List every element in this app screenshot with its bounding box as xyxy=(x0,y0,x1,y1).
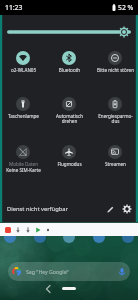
staticText: Mobile Daten xyxy=(3,161,44,167)
staticText: Keine SIM-Karte xyxy=(6,167,41,173)
button[interactable]: Automatisch drehen xyxy=(46,94,92,140)
staticText: Dienst nicht verfügbar xyxy=(7,205,68,213)
staticText: Bitte nicht stören xyxy=(95,67,136,73)
button[interactable]: Streamen xyxy=(92,142,138,188)
staticText: Sag "Hey Google" xyxy=(26,268,69,275)
staticText: Flugmodus xyxy=(49,161,90,167)
button[interactable]: Energiesparmo- dus xyxy=(92,94,138,140)
button[interactable]: Bitte nicht stören xyxy=(92,48,138,94)
button[interactable]: Taschenlampe xyxy=(0,94,46,140)
button[interactable]: Mobile Daten xyxy=(0,142,46,188)
button[interactable]: Sprachsuche xyxy=(118,268,126,276)
button[interactable]: Helligkeit xyxy=(0,24,138,40)
button[interactable]: o2-WLAN05 xyxy=(0,48,46,94)
staticText: Streamen xyxy=(95,161,136,167)
button[interactable]: Einstellungen xyxy=(120,202,134,216)
staticText: 11:23 xyxy=(5,3,23,12)
staticText: Taschenlampe xyxy=(3,113,44,119)
button[interactable]: Sag "Hey Google" xyxy=(8,262,130,281)
staticText: Energiesparmo- dus xyxy=(95,113,136,125)
staticText: o2-WLAN05 xyxy=(3,67,44,73)
staticText: Bluetooth xyxy=(49,67,90,73)
button[interactable]: Bluetooth xyxy=(46,48,92,94)
staticText: Automatisch drehen xyxy=(49,113,90,125)
staticText: 52 % xyxy=(118,3,134,12)
button[interactable]: Bearbeiten xyxy=(103,202,117,216)
button[interactable]: Flugmodus xyxy=(46,142,92,188)
